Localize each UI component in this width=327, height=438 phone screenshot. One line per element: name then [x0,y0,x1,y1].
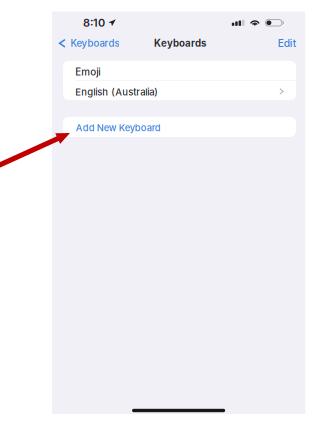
button[interactable]: Edit [272,33,305,53]
button[interactable]: Emoji [63,61,296,80]
button[interactable]: Add New Keyboard [63,117,296,137]
staticText: Keyboards [70,38,119,49]
button[interactable]: English (Australia) [63,81,296,100]
button[interactable]: Keyboards [52,34,124,53]
staticText: Emoji [75,66,100,78]
staticText: 8:10 [83,16,105,29]
staticText: Keyboards [154,38,206,49]
staticText: Add New Keyboard [76,122,161,133]
staticText: Edit [278,37,296,49]
staticText: English (Australia) [75,86,158,98]
